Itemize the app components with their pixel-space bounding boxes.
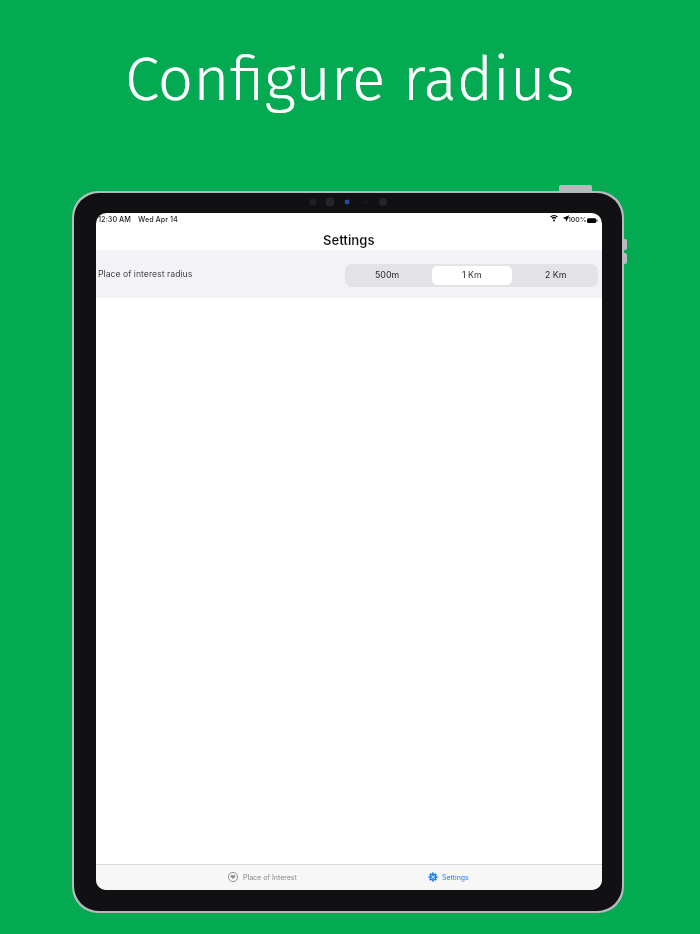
button[interactable]: 2 Km xyxy=(514,264,598,287)
staticText: 1 Km xyxy=(462,270,482,281)
staticText: 500m xyxy=(375,270,400,281)
staticText: Wed Apr 14 xyxy=(138,215,178,224)
staticText: Place of Interest xyxy=(243,873,297,881)
button[interactable]: 500m xyxy=(345,264,430,287)
staticText: Settings xyxy=(442,873,469,881)
staticText: 2 Km xyxy=(545,270,567,281)
staticText: Configure radius xyxy=(125,42,575,116)
staticText: Place of interest radius xyxy=(98,269,193,280)
button[interactable]: Settings xyxy=(428,872,469,882)
button[interactable]: Place of Interest xyxy=(228,872,297,882)
staticText: 100% xyxy=(568,215,587,223)
staticText: Settings xyxy=(323,232,375,248)
button[interactable]: 1 Km xyxy=(432,266,512,285)
staticText: 12:30 AM xyxy=(98,215,131,224)
